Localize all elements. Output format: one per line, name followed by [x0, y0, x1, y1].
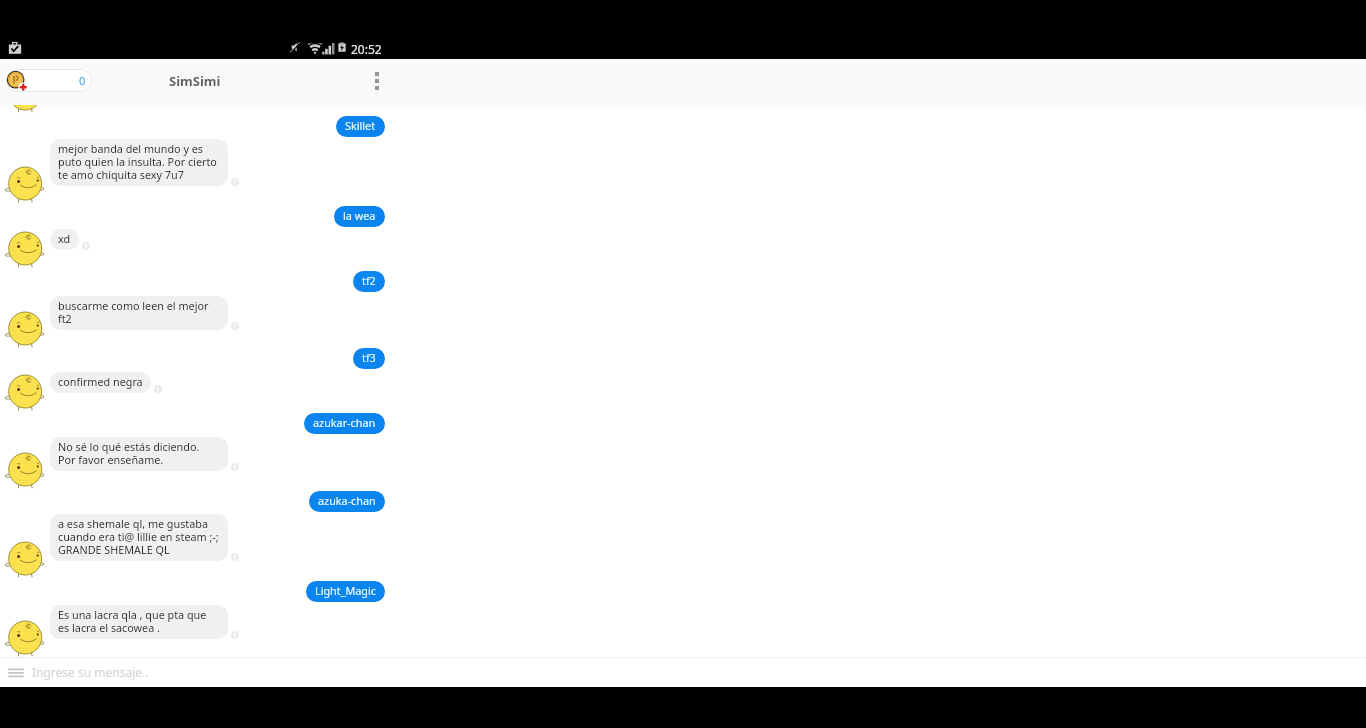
button[interactable]: 0 — [6, 69, 92, 92]
staticText: tf2 — [362, 275, 376, 288]
button[interactable]: tf3 — [353, 348, 385, 369]
button[interactable]: xd — [50, 229, 79, 250]
staticText: Light_Magic — [315, 585, 376, 598]
button[interactable]: Es una lacra qla , que pta que es lacra … — [50, 605, 228, 639]
staticText: mejor banda del mundo y es puto quien la… — [58, 143, 217, 182]
button[interactable]: Light_Magic — [306, 581, 385, 602]
button[interactable]: azuka-chan — [309, 491, 385, 512]
button[interactable]: More options — [369, 70, 385, 92]
staticText: xd — [58, 233, 71, 246]
staticText: a esa shemale ql, me gustaba cuando era … — [58, 518, 219, 557]
staticText: Ingrese su mensaje.. — [32, 664, 149, 680]
staticText: azuka-chan — [318, 495, 376, 508]
staticText: 20:52 — [351, 41, 382, 57]
button[interactable]: a esa shemale ql, me gustaba cuando era … — [50, 514, 228, 561]
button[interactable]: Menu — [8, 664, 24, 680]
staticText: 0 — [79, 73, 86, 88]
button[interactable]: tf2 — [353, 271, 385, 292]
staticText: SimSimi — [169, 72, 221, 90]
button[interactable]: la wea — [334, 206, 385, 227]
staticText: Es una lacra qla , que pta que es lacra … — [58, 609, 207, 635]
button[interactable]: Add points — [6, 70, 27, 91]
button[interactable]: azukar-chan — [304, 413, 385, 434]
button[interactable]: confirmed negra — [50, 372, 151, 393]
staticText: azukar-chan — [313, 417, 376, 430]
staticText: confirmed negra — [58, 376, 143, 389]
button[interactable]: Skillet — [336, 116, 385, 137]
staticText: la wea — [343, 210, 376, 223]
button[interactable]: No sé lo qué estás diciendo. Por favor e… — [50, 437, 228, 471]
staticText: buscarme como leen el mejor ft2 — [58, 300, 209, 326]
button[interactable]: mejor banda del mundo y es puto quien la… — [50, 139, 228, 186]
button[interactable]: buscarme como leen el mejor ft2 — [50, 296, 228, 330]
staticText: Skillet — [345, 120, 376, 133]
staticText: No sé lo qué estás diciendo. Por favor e… — [58, 441, 200, 467]
staticText: tf3 — [362, 352, 376, 365]
